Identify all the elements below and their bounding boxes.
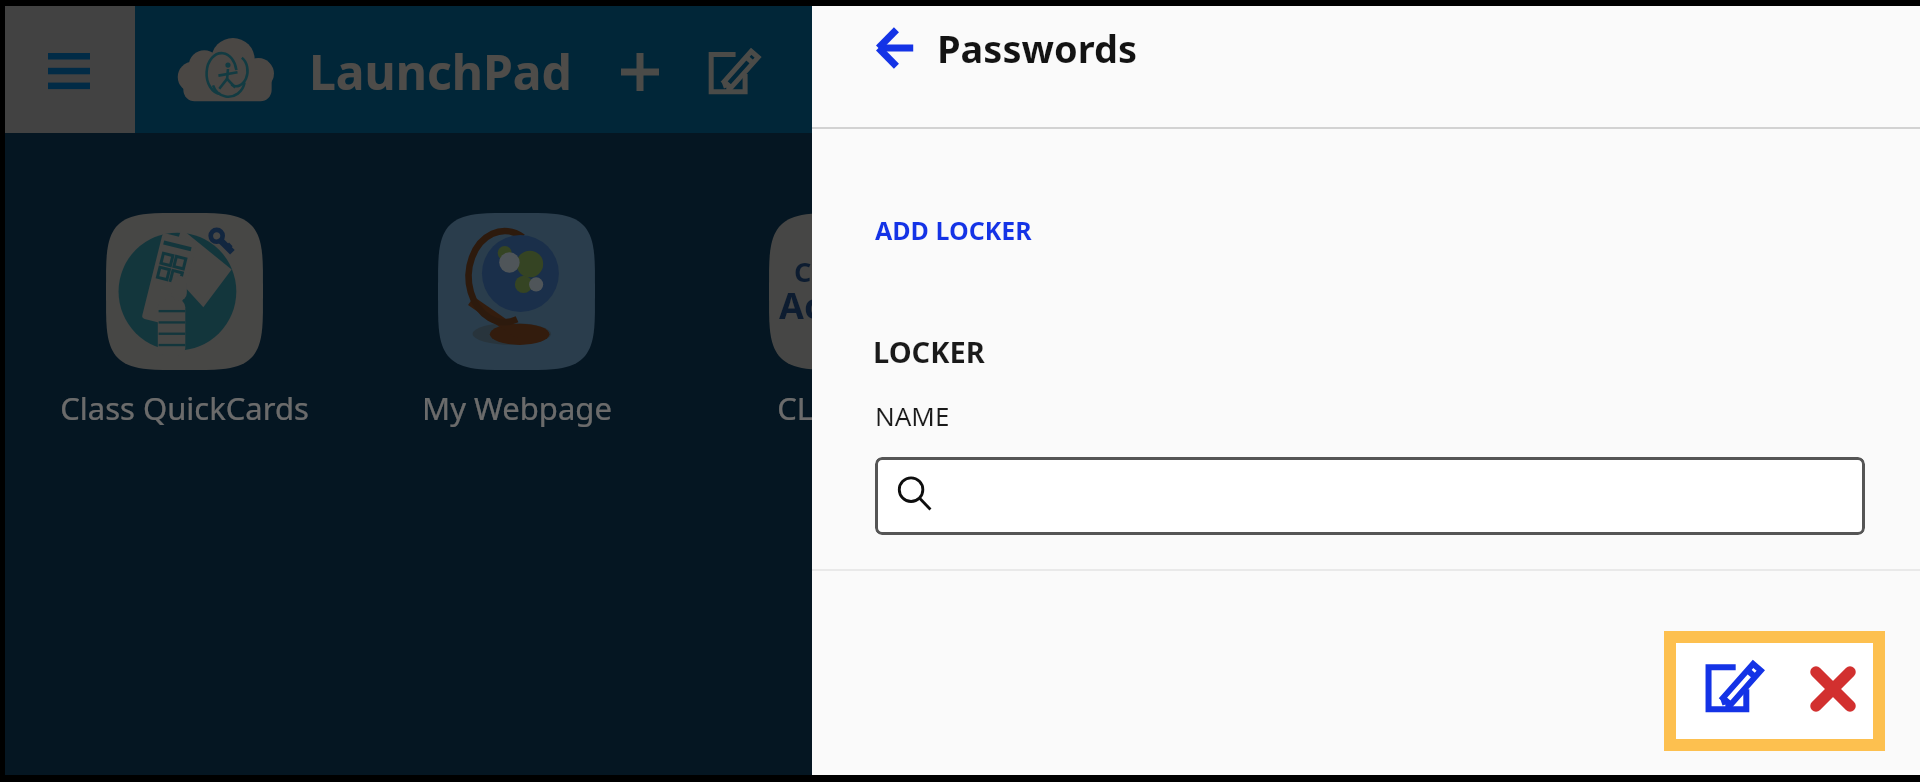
staticText: LOCKER bbox=[873, 332, 985, 371]
staticText: Passwords bbox=[937, 22, 1138, 74]
staticText: Class QuickCards bbox=[60, 387, 309, 429]
staticText: NAME bbox=[875, 398, 950, 433]
button[interactable]: Menu bbox=[5, 6, 135, 133]
button[interactable]: Compose bbox=[699, 36, 769, 106]
button[interactable]: Class QuickCards bbox=[36, 207, 333, 429]
staticText: My Webpage bbox=[422, 387, 612, 429]
button[interactable]: Delete locker bbox=[1798, 648, 1868, 730]
button[interactable]: Edit locker bbox=[1694, 645, 1774, 727]
staticText: CL bbox=[794, 253, 827, 290]
staticText: Access bbox=[779, 281, 899, 330]
button[interactable]: My Webpage bbox=[368, 207, 665, 429]
staticText: ADD LOCKER bbox=[875, 213, 1032, 247]
button[interactable]: ADD LOCKER bbox=[875, 213, 1032, 247]
staticText: CL Access bbox=[777, 387, 918, 429]
button[interactable]: Add bbox=[607, 39, 673, 105]
staticText: LaunchPad bbox=[309, 39, 572, 104]
button[interactable]: CL bbox=[699, 207, 996, 429]
button[interactable]: Back bbox=[860, 13, 929, 82]
button[interactable]: Search name bbox=[875, 457, 1865, 535]
